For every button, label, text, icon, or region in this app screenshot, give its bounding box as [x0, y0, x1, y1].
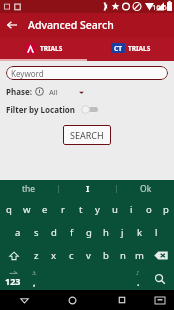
staticText: All — [49, 87, 58, 97]
button[interactable]: c — [63, 244, 80, 267]
staticText: c — [69, 249, 74, 262]
staticText: z — [34, 249, 39, 262]
staticText: k — [137, 226, 143, 239]
staticText: Ok — [140, 183, 152, 195]
button[interactable]: SEARCH — [63, 125, 111, 145]
button[interactable]: Recent apps — [97, 290, 146, 310]
button[interactable]: Backspace — [148, 244, 174, 267]
button[interactable]: All — [49, 87, 85, 97]
staticText: p — [163, 203, 169, 216]
staticText: i — [130, 203, 133, 216]
button[interactable]: s — [27, 221, 45, 244]
staticText: y — [95, 203, 100, 216]
staticText: x — [51, 249, 57, 262]
staticText: the — [22, 183, 36, 195]
staticText: q — [6, 203, 12, 216]
button[interactable]: g — [80, 221, 97, 244]
staticText: TRIALS — [128, 44, 151, 53]
button[interactable]: n — [114, 244, 131, 267]
button[interactable]: z — [27, 244, 45, 267]
staticText: n — [120, 249, 126, 262]
button[interactable]: t — [72, 197, 89, 221]
staticText: h — [103, 226, 109, 239]
button[interactable]: m — [131, 244, 148, 267]
button[interactable]: 123 — [0, 267, 26, 290]
button[interactable]: e — [36, 197, 54, 221]
staticText: v — [86, 249, 91, 262]
staticText: , — [33, 276, 36, 288]
staticText: Filter by Location — [6, 104, 76, 115]
button[interactable]: CT — [87, 37, 174, 59]
button[interactable]: Ok — [117, 180, 174, 197]
button[interactable]: h — [97, 221, 114, 244]
staticText: m — [135, 249, 144, 262]
staticText: g — [86, 226, 92, 239]
button[interactable]: a — [9, 221, 27, 244]
button[interactable]: TRIALS — [0, 37, 87, 59]
button[interactable]: Hide keyboard — [146, 290, 174, 310]
button[interactable]: Back — [0, 290, 48, 310]
staticText: Keyword — [11, 68, 44, 79]
staticText: t — [79, 203, 83, 216]
button[interactable]: f — [63, 221, 80, 244]
button[interactable]: Shift — [0, 244, 27, 267]
staticText: CT — [114, 44, 122, 53]
staticText: SEARCH — [70, 129, 104, 141]
button[interactable]: u — [106, 197, 123, 221]
button[interactable]: Period — [129, 267, 146, 290]
button[interactable]: Back — [0, 13, 24, 37]
staticText: d — [51, 226, 57, 239]
button[interactable]: Comma — [26, 267, 43, 290]
button[interactable]: p — [157, 197, 174, 221]
button[interactable]: Filter by Location — [6, 104, 99, 115]
staticText: . — [137, 276, 140, 288]
button[interactable]: k — [131, 221, 148, 244]
button[interactable]: d — [45, 221, 63, 244]
staticText: u — [112, 203, 118, 216]
button[interactable]: the — [0, 180, 58, 197]
staticText: I — [86, 183, 90, 195]
button[interactable]: Search — [146, 267, 174, 290]
button[interactable]: o — [140, 197, 157, 221]
button[interactable]: Phase info — [35, 87, 44, 96]
button[interactable]: i — [123, 197, 140, 221]
staticText: 123 — [5, 275, 21, 287]
staticText: o — [146, 203, 152, 216]
staticText: w — [23, 203, 31, 216]
button[interactable]: Keyword — [6, 66, 168, 80]
button[interactable]: j — [114, 221, 131, 244]
staticText: b — [103, 249, 109, 262]
button[interactable]: b — [97, 244, 114, 267]
staticText: ⚓ — [32, 270, 37, 276]
button[interactable]: v — [80, 244, 97, 267]
staticText: j — [121, 226, 124, 239]
staticText: a — [15, 226, 21, 239]
staticText: f — [70, 226, 74, 239]
staticText: ♪ — [136, 270, 140, 276]
button[interactable]: r — [54, 197, 72, 221]
staticText: Advanced Search — [28, 18, 114, 32]
staticText: 16:51 — [152, 2, 172, 12]
button[interactable]: y — [89, 197, 106, 221]
button[interactable]: q — [0, 197, 18, 221]
button[interactable]: l — [148, 221, 165, 244]
button[interactable]: I — [59, 180, 116, 197]
staticText: l — [155, 226, 158, 239]
button[interactable]: Home — [48, 290, 97, 310]
staticText: e — [42, 203, 48, 216]
button[interactable]: w — [18, 197, 36, 221]
staticText: s — [34, 226, 39, 239]
staticText: Phase: — [6, 86, 32, 97]
staticText: r — [61, 203, 65, 216]
staticText: TRIALS — [40, 44, 63, 53]
button[interactable]: x — [45, 244, 63, 267]
